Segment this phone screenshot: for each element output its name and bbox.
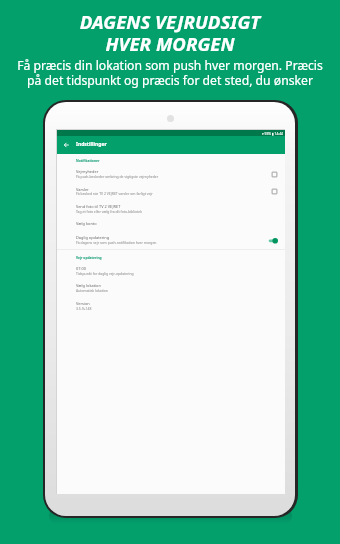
staticText: Få besked når TV 2 VEJRET varsler om far… bbox=[76, 191, 153, 196]
button[interactable]: Varsler bbox=[57, 187, 285, 197]
staticText: Send foto til TV 2 VEJRET bbox=[76, 204, 121, 209]
button[interactable]: Version bbox=[57, 301, 285, 311]
button[interactable]: Tilbage bbox=[58, 138, 72, 152]
staticText: ▾ 93% ▮ 14:44 bbox=[262, 131, 283, 135]
staticText: Varsler bbox=[76, 187, 89, 192]
staticText: Få præcis din lokation som push hver mor… bbox=[0, 57, 340, 89]
button[interactable]: Send foto til TV 2 VEJRET bbox=[57, 204, 285, 214]
staticText: DAGENS VEJRUDSIGT bbox=[0, 9, 340, 34]
button[interactable]: Slå til bbox=[270, 170, 279, 179]
staticText: 07:00 bbox=[76, 266, 86, 271]
staticText: Få dagens vejr som push-notifikation hve… bbox=[76, 240, 157, 245]
staticText: Vælg lokation bbox=[76, 283, 101, 288]
staticText: 3.5.9+148 bbox=[76, 306, 92, 311]
button[interactable]: Daglig opdatering bbox=[57, 235, 285, 245]
button[interactable]: Vælg konto bbox=[57, 221, 285, 231]
button[interactable]: 07:00 bbox=[57, 266, 285, 276]
staticText: Vejrnyheder bbox=[76, 169, 99, 174]
button[interactable]: Daglig opdatering bbox=[268, 236, 281, 246]
staticText: Indstillinger bbox=[76, 141, 107, 148]
staticText: Notifikationer bbox=[76, 158, 100, 162]
staticText: Automatisk lokation bbox=[76, 288, 108, 293]
staticText: Vælg konto bbox=[76, 221, 97, 226]
staticText: HVER MORGEN bbox=[0, 31, 340, 56]
button[interactable]: Slå til bbox=[270, 187, 279, 196]
button[interactable]: Vejrnyheder bbox=[57, 169, 285, 179]
staticText: Vejr opdatering bbox=[76, 255, 102, 259]
staticText: Version bbox=[76, 301, 90, 306]
staticText: Tag et foto eller vælg fra dit foto-bibl… bbox=[76, 209, 142, 214]
staticText: Tidspunkt for daglig vejr-opdatering bbox=[76, 271, 134, 276]
staticText: Få push-beskeder omkring de vigtigste ve… bbox=[76, 174, 159, 179]
staticText: Daglig opdatering bbox=[76, 235, 110, 240]
button[interactable]: Vælg lokation bbox=[57, 283, 285, 293]
